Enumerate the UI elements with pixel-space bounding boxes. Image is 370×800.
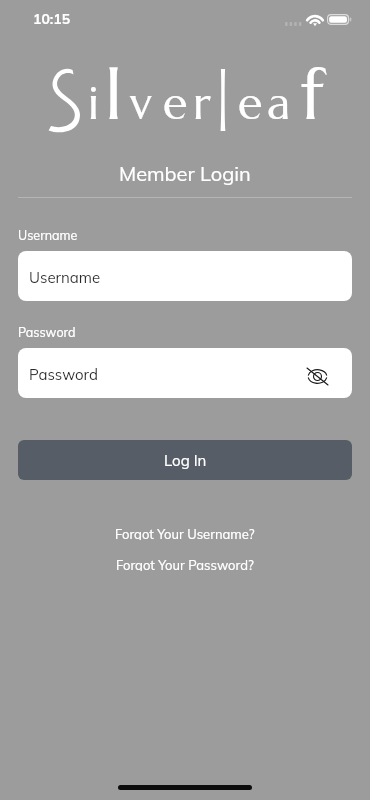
staticText: f [301, 50, 324, 139]
staticText: a [267, 75, 291, 131]
button[interactable]: Forgot Your Password? [104, 553, 266, 575]
button[interactable]: Show password [302, 361, 332, 391]
staticText: Password [29, 365, 98, 384]
button[interactable]: Username [18, 251, 352, 301]
other: Battery [327, 14, 351, 25]
staticText: Forgot Your Username? [115, 526, 255, 540]
staticText: Username [29, 268, 101, 287]
staticText: 10:15 [33, 10, 71, 28]
staticText: Username [18, 227, 78, 243]
staticText: e [238, 75, 263, 131]
other: Cellular signal [285, 22, 302, 26]
staticText: Forgot Your Password? [116, 557, 254, 571]
staticText: l [105, 50, 123, 139]
other: Silverleaf [0, 0, 370, 800]
staticText: v [130, 75, 152, 131]
staticText: Log In [164, 451, 207, 470]
staticText: e [163, 75, 188, 131]
staticText: Member Login [119, 161, 251, 185]
button[interactable]: Password [18, 348, 352, 398]
staticText: Password [18, 324, 76, 340]
staticText: r [193, 75, 211, 131]
other: Wi-Fi [307, 14, 323, 26]
button[interactable]: Forgot Your Username? [103, 522, 267, 544]
staticText: i [88, 75, 99, 131]
button[interactable]: Log In [18, 440, 352, 480]
